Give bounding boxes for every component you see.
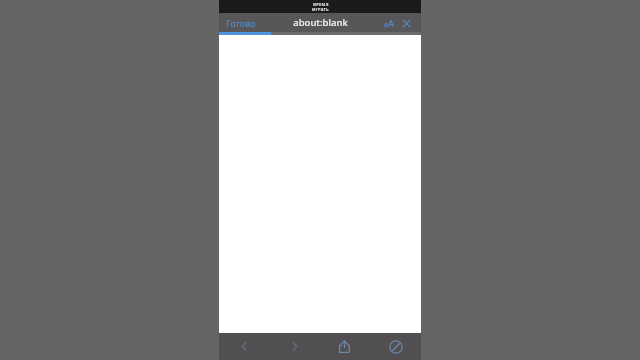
- staticText: about:blank: [293, 16, 348, 29]
- staticText: A: [388, 17, 394, 29]
- staticText: a: [384, 20, 388, 29]
- staticText: ИГРАТЬ: [312, 7, 329, 12]
- button[interactable]: Готово: [226, 17, 256, 29]
- button[interactable]: Close: [397, 14, 415, 32]
- staticText: Готово: [226, 17, 256, 29]
- button[interactable]: Text size: [381, 15, 397, 31]
- button[interactable]: Share: [319, 333, 370, 360]
- button[interactable]: Open in Safari: [370, 333, 421, 360]
- staticText: ВРЕМЯ: [313, 2, 329, 7]
